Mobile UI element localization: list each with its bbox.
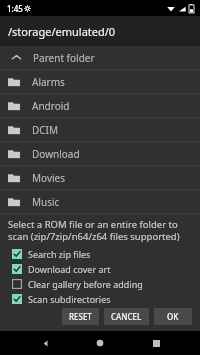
staticText: Scan subdirectories (28, 293, 111, 305)
staticText: Parent folder (33, 51, 95, 65)
button[interactable]: Home (89, 332, 111, 354)
button[interactable]: RESET (62, 308, 99, 325)
button[interactable]: Back (34, 332, 56, 354)
button[interactable]: Clear gallery before adding (8, 276, 194, 291)
staticText: Android (32, 99, 70, 113)
button[interactable]: DCIM (0, 118, 200, 141)
staticText: Clear gallery before adding (28, 278, 143, 290)
staticText: 1:45 (7, 3, 23, 14)
button[interactable]: CANCEL (104, 308, 149, 325)
button[interactable]: Scan subdirectories (8, 291, 194, 306)
button[interactable]: Search zip files (8, 246, 194, 261)
staticText: Select a ROM file or an entire folder to… (8, 218, 194, 243)
button[interactable]: Music (0, 190, 200, 213)
staticText: Music (32, 195, 60, 209)
staticText: /storage/emulated/0 (8, 24, 116, 39)
staticText: OK (167, 311, 179, 322)
button[interactable]: Alarms (0, 70, 200, 93)
staticText: Movies (32, 171, 66, 185)
staticText: Search zip files (28, 248, 91, 260)
button[interactable]: Parent folder (0, 46, 200, 69)
staticText: CANCEL (111, 311, 142, 322)
staticText: Download cover art (28, 263, 111, 275)
button[interactable]: Movies (0, 166, 200, 189)
button[interactable]: Download cover art (8, 261, 194, 276)
staticText: DCIM (32, 123, 59, 137)
staticText: Download (32, 147, 80, 161)
button[interactable]: Android (0, 94, 200, 117)
button[interactable]: Download (0, 142, 200, 165)
button[interactable]: Recent apps (145, 332, 167, 354)
button[interactable]: OK (154, 308, 192, 325)
staticText: Alarms (32, 75, 65, 89)
staticText: RESET (69, 311, 92, 322)
